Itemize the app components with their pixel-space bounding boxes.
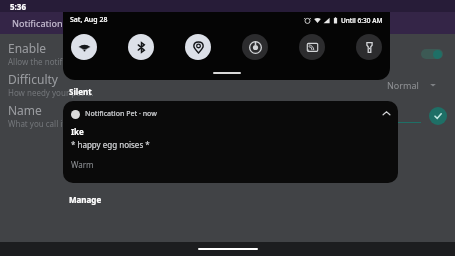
staticText: * happy egg noises *: [71, 139, 150, 150]
button[interactable]: Notification Pet · now: [63, 101, 398, 183]
button[interactable]: Confirm: [429, 107, 447, 125]
button[interactable]: Normal: [387, 79, 443, 91]
staticText: Sat, Aug 28: [70, 15, 108, 25]
staticText: Enable: [8, 40, 47, 56]
button[interactable]: Location: [185, 34, 211, 60]
staticText: Silent: [69, 86, 92, 97]
staticText: Normal: [387, 79, 419, 91]
staticText: Ike: [71, 126, 84, 137]
staticText: How needy your pet is.: [8, 87, 94, 98]
staticText: Notification Pet · now: [85, 109, 157, 119]
button[interactable]: Enable: [8, 40, 447, 67]
button[interactable]: [421, 49, 443, 59]
staticText: Warm: [71, 159, 94, 170]
button[interactable]: Difficulty: [8, 71, 447, 98]
staticText: Until 6:30 AM: [341, 16, 383, 25]
button[interactable]: Wi-Fi: [71, 34, 97, 60]
button[interactable]: Cast screen: [299, 34, 325, 60]
staticText: 5:36: [10, 1, 26, 12]
button[interactable]: Bluetooth: [128, 34, 154, 60]
staticText: Notification Pet: [12, 17, 80, 29]
button[interactable]: Manage: [63, 192, 108, 207]
button[interactable]: Flashlight: [356, 34, 382, 60]
staticText: What you call it.: [8, 118, 68, 129]
button[interactable]: Do Not Disturb: [242, 34, 268, 60]
staticText: Allow the notification pet: [8, 56, 102, 67]
staticText: Name: [8, 102, 42, 118]
staticText: Difficulty: [8, 71, 58, 87]
staticText: Manage: [69, 194, 102, 205]
button[interactable]: Collapse: [379, 106, 393, 120]
